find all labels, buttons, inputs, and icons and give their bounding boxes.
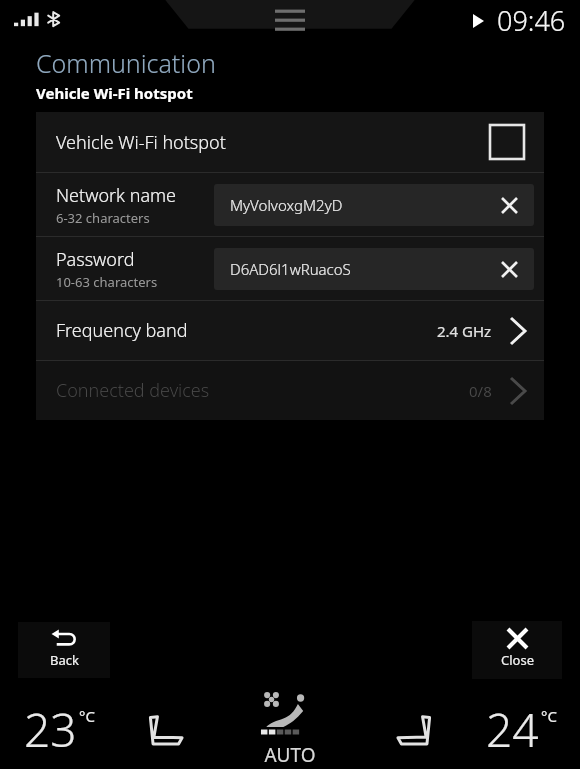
staticText: 09:46: [497, 2, 566, 39]
button[interactable]: Connected devices: [36, 361, 544, 420]
button[interactable]: D6AD6l1wRuacoS: [214, 248, 534, 290]
button[interactable]: Vehicle Wi-Fi hotspot: [36, 112, 544, 172]
button[interactable]: Auto climate: [218, 689, 362, 769]
staticText: 23: [24, 698, 77, 761]
staticText: MyVolvoxgM2yD: [230, 195, 343, 215]
other: Clear Password: [496, 256, 522, 282]
staticText: Network name: [56, 183, 177, 208]
other: Clear Network name: [496, 192, 522, 218]
button[interactable]: Frequency band: [36, 301, 544, 360]
staticText: Communication: [36, 46, 216, 80]
button[interactable]: 24: [462, 689, 580, 769]
staticText: AUTO: [264, 742, 316, 768]
staticText: D6AD6l1wRuacoS: [230, 259, 351, 279]
button[interactable]: 23: [0, 689, 118, 769]
staticText: °C: [79, 706, 95, 726]
staticText: Close: [501, 651, 534, 669]
button[interactable]: Back: [18, 622, 110, 678]
staticText: Password: [56, 247, 135, 272]
staticText: 24: [486, 698, 539, 761]
button[interactable]: Close: [472, 621, 562, 679]
button[interactable]: MyVolvoxgM2yD: [214, 184, 534, 226]
staticText: 0/8: [469, 381, 492, 401]
staticText: 10-63 characters: [56, 273, 158, 291]
staticText: °C: [541, 706, 557, 726]
staticText: Back: [50, 651, 79, 669]
staticText: Frequency band: [56, 318, 188, 343]
staticText: Vehicle Wi-Fi hotspot: [36, 83, 193, 103]
staticText: Vehicle Wi-Fi hotspot: [56, 130, 226, 155]
staticText: 2.4 GHz: [437, 321, 492, 341]
button[interactable]: Passenger seat heating: [362, 689, 462, 769]
button[interactable]: Driver seat heating: [118, 689, 218, 769]
staticText: 6-32 characters: [56, 209, 150, 227]
staticText: Connected devices: [56, 378, 210, 403]
